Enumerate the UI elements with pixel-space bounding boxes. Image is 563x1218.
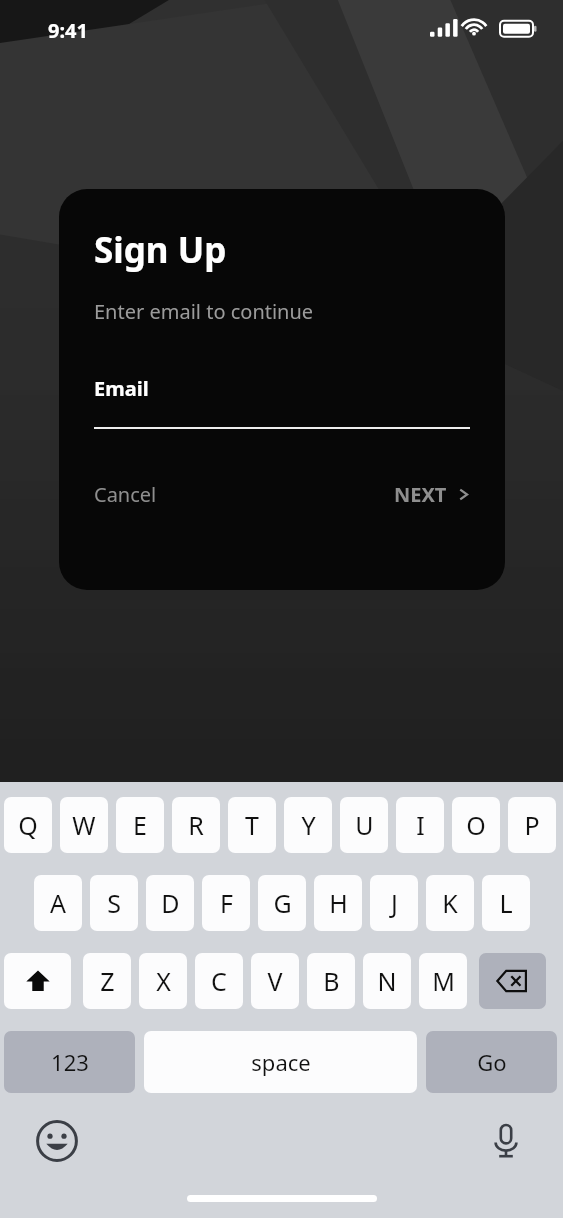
- staticText: R: [188, 808, 204, 842]
- button[interactable]: Backspace: [479, 953, 546, 1009]
- staticText: NEXT: [394, 481, 447, 508]
- button[interactable]: U: [340, 797, 388, 853]
- button[interactable]: Emoji: [33, 1117, 81, 1165]
- staticText: V: [267, 964, 283, 998]
- staticText: Enter email to continue: [94, 298, 314, 325]
- button[interactable]: V: [251, 953, 299, 1009]
- button[interactable]: O: [452, 797, 500, 853]
- staticText: Email: [94, 375, 149, 402]
- staticText: Go: [477, 1047, 507, 1077]
- staticText: O: [466, 808, 486, 842]
- button[interactable]: X: [139, 953, 187, 1009]
- staticText: Cancel: [94, 481, 157, 508]
- button[interactable]: Go: [426, 1031, 557, 1093]
- button[interactable]: R: [172, 797, 220, 853]
- staticText: K: [442, 886, 458, 920]
- staticText: D: [161, 886, 180, 920]
- staticText: J: [391, 886, 398, 920]
- button[interactable]: A: [34, 875, 82, 931]
- button[interactable]: L: [482, 875, 530, 931]
- staticText: B: [323, 964, 340, 998]
- staticText: I: [416, 808, 425, 842]
- staticText: Sign Up: [94, 226, 227, 274]
- button[interactable]: J: [370, 875, 418, 931]
- button[interactable]: T: [228, 797, 276, 853]
- staticText: E: [133, 808, 147, 842]
- button[interactable]: H: [314, 875, 362, 931]
- staticText: L: [499, 886, 513, 920]
- staticText: C: [211, 964, 227, 998]
- button[interactable]: B: [307, 953, 355, 1009]
- button[interactable]: M: [419, 953, 467, 1009]
- staticText: 9:41: [48, 17, 88, 44]
- button[interactable]: D: [146, 875, 194, 931]
- button[interactable]: C: [195, 953, 243, 1009]
- staticText: A: [50, 886, 66, 920]
- button[interactable]: P: [508, 797, 556, 853]
- button[interactable]: space: [144, 1031, 417, 1093]
- button[interactable]: Y: [284, 797, 332, 853]
- button[interactable]: NEXT: [394, 477, 470, 512]
- staticText: G: [273, 886, 292, 920]
- staticText: S: [107, 886, 121, 920]
- staticText: T: [245, 808, 259, 842]
- staticText: U: [355, 808, 374, 842]
- button[interactable]: K: [426, 875, 474, 931]
- button[interactable]: F: [202, 875, 250, 931]
- staticText: M: [432, 964, 455, 998]
- staticText: F: [220, 886, 233, 920]
- staticText: X: [156, 964, 171, 998]
- staticText: H: [329, 886, 348, 920]
- staticText: P: [524, 808, 540, 842]
- button[interactable]: Cancel: [94, 477, 157, 512]
- button[interactable]: Shift: [4, 953, 71, 1009]
- button[interactable]: W: [60, 797, 108, 853]
- button[interactable]: Z: [83, 953, 131, 1009]
- button[interactable]: N: [363, 953, 411, 1009]
- staticText: 123: [51, 1047, 89, 1077]
- staticText: N: [377, 964, 397, 998]
- staticText: W: [72, 808, 96, 842]
- button[interactable]: S: [90, 875, 138, 931]
- button[interactable]: Voice input: [482, 1117, 530, 1165]
- staticText: Z: [100, 964, 115, 998]
- staticText: Y: [301, 808, 316, 842]
- button[interactable]: Q: [4, 797, 52, 853]
- button[interactable]: E: [116, 797, 164, 853]
- button[interactable]: G: [258, 875, 306, 931]
- staticText: space: [251, 1047, 311, 1077]
- staticText: Q: [18, 808, 38, 842]
- button[interactable]: 123: [4, 1031, 135, 1093]
- button[interactable]: I: [396, 797, 444, 853]
